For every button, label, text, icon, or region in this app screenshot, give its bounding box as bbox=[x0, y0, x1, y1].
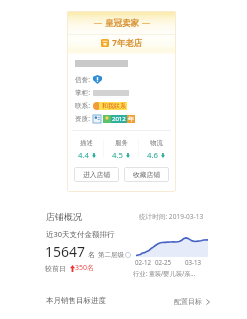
staticText: 服务 bbox=[115, 139, 128, 147]
staticText: 350名 bbox=[75, 263, 95, 273]
staticText: 02-25 bbox=[155, 258, 172, 266]
staticText: 名 bbox=[88, 250, 95, 259]
staticText: 本月销售目标进度 bbox=[46, 296, 106, 305]
staticText: 描述 bbox=[80, 139, 93, 147]
staticText: 配置目标 bbox=[174, 297, 202, 306]
staticText: 第二层级 bbox=[98, 251, 124, 259]
staticText: 和我联系 bbox=[102, 102, 126, 110]
button[interactable]: 配置目标 bbox=[174, 297, 210, 306]
staticText: 2012 bbox=[112, 115, 126, 123]
staticText: 皇冠卖家 bbox=[105, 18, 139, 29]
staticText: 统计时间: 2019-03-13 bbox=[139, 212, 204, 221]
staticText: 收藏店铺 bbox=[133, 170, 161, 179]
button[interactable]: 收藏店铺 bbox=[124, 167, 169, 182]
staticText: 信誉: bbox=[75, 75, 90, 84]
staticText: 较前日 bbox=[45, 264, 66, 273]
staticText: 03-13 bbox=[185, 258, 202, 266]
staticText: 行业: 童装/婴儿装/亲… bbox=[133, 269, 196, 277]
staticText: 近30天支付金额排行 bbox=[46, 229, 115, 239]
staticText: 4.6 bbox=[147, 150, 159, 161]
button[interactable]: 进入店铺 bbox=[74, 167, 119, 182]
staticText: 资质: bbox=[75, 114, 90, 123]
other: 配置目标 bbox=[206, 299, 210, 305]
staticText: 物流 bbox=[150, 139, 163, 147]
staticText: 02-12 bbox=[135, 258, 152, 266]
staticText: 掌柜: bbox=[75, 88, 90, 97]
staticText: 4.5 bbox=[112, 150, 124, 161]
staticText: 联系: bbox=[75, 101, 90, 110]
staticText: 4.4 bbox=[78, 150, 90, 161]
staticText: 年 bbox=[128, 115, 134, 123]
staticText: 15647 bbox=[45, 242, 86, 261]
staticText: 进入店铺 bbox=[83, 170, 111, 179]
staticText: 店铺概况 bbox=[46, 211, 82, 222]
staticText: 7年老店 bbox=[112, 37, 143, 49]
